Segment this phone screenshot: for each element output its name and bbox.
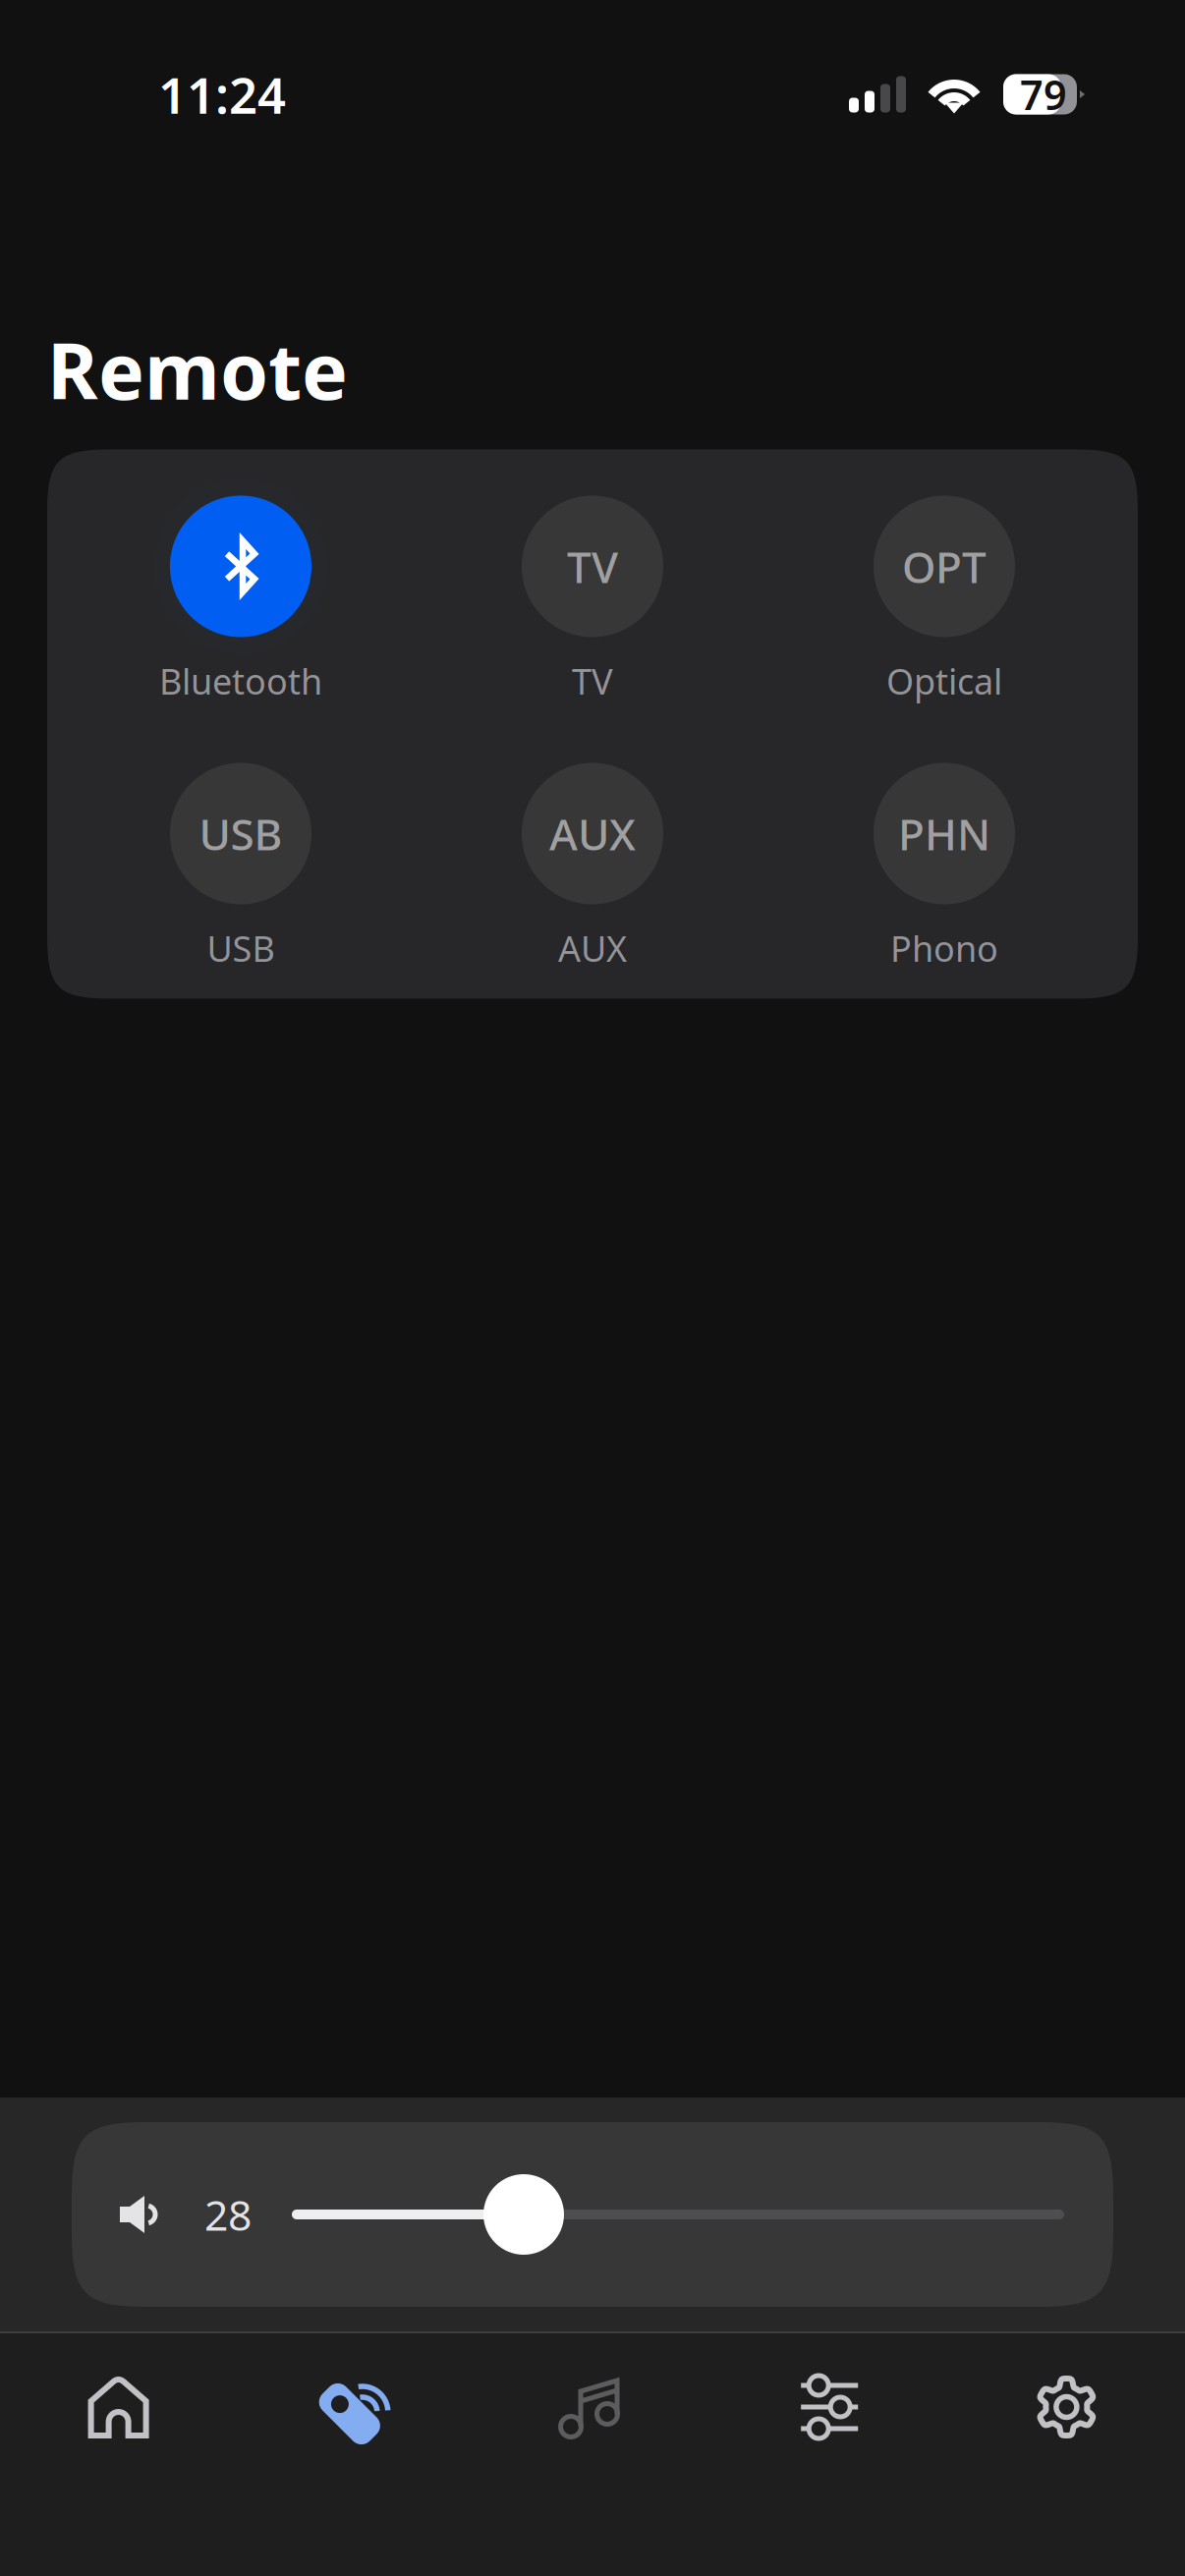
staticText: Bluetooth <box>159 657 322 704</box>
button[interactable]: PHN <box>768 763 1120 961</box>
staticText: USB <box>207 925 275 972</box>
button[interactable]: USB <box>65 763 417 961</box>
staticText: Optical <box>886 657 1002 704</box>
staticText: PHN <box>898 805 990 862</box>
button[interactable]: Settings <box>948 2333 1185 2576</box>
staticText: Phono <box>890 925 998 972</box>
button[interactable]: Music <box>474 2333 711 2576</box>
staticText: Remote <box>47 318 348 421</box>
button[interactable]: Home <box>0 2333 237 2576</box>
staticText: 11:24 <box>158 61 286 127</box>
button[interactable]: Remote <box>237 2333 474 2576</box>
staticText: OPT <box>902 538 987 595</box>
staticText: AUX <box>558 925 627 972</box>
staticText: 79 <box>1020 67 1067 121</box>
staticText: 28 <box>204 2187 252 2242</box>
staticText: TV <box>567 538 618 595</box>
button[interactable]: TV <box>417 496 768 694</box>
staticText: AUX <box>549 805 636 862</box>
button[interactable]: Bluetooth <box>65 496 417 694</box>
staticText: USB <box>199 805 282 862</box>
button[interactable]: OPT <box>768 496 1120 694</box>
button[interactable]: Equalizer <box>711 2333 948 2576</box>
staticText: TV <box>572 657 613 704</box>
button[interactable]: AUX <box>417 763 768 961</box>
